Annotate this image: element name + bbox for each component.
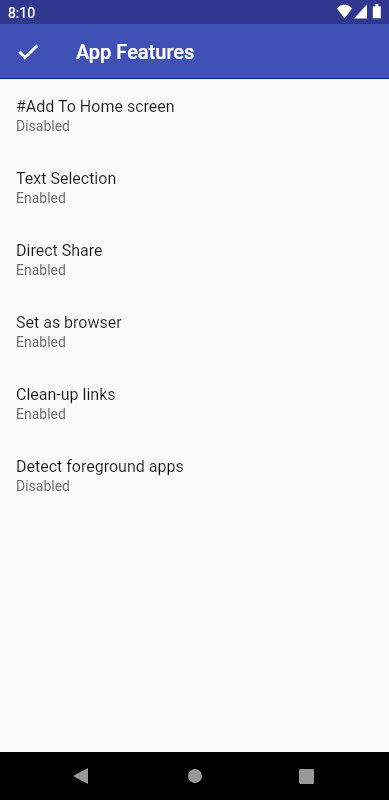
staticText: Disabled (16, 118, 71, 134)
staticText: Disabled (16, 478, 71, 494)
button[interactable]: Recents (250, 752, 362, 800)
staticText: Enabled (16, 262, 66, 278)
staticText: Clean-up links (16, 385, 116, 404)
staticText: App Features (76, 40, 195, 63)
button[interactable]: Set as browser (0, 304, 389, 376)
staticText: #Add To Home screen (16, 97, 175, 116)
button[interactable]: Clean-up links (0, 376, 389, 448)
button[interactable]: Home (138, 752, 251, 800)
staticText: Direct Share (16, 241, 103, 260)
button[interactable]: #Add To Home screen (0, 88, 389, 160)
button[interactable]: Back (24, 752, 136, 800)
staticText: Enabled (16, 406, 66, 422)
staticText: Set as browser (16, 313, 122, 332)
button[interactable]: Direct Share (0, 232, 389, 304)
staticText: Detect foreground apps (16, 457, 184, 476)
staticText: Enabled (16, 334, 66, 350)
button[interactable]: Text Selection (0, 160, 389, 232)
button[interactable]: Detect foreground apps (0, 448, 389, 520)
staticText: Text Selection (16, 169, 117, 188)
button[interactable]: Done (0, 24, 56, 78)
staticText: 8:10 (8, 5, 35, 21)
staticText: Enabled (16, 190, 66, 206)
